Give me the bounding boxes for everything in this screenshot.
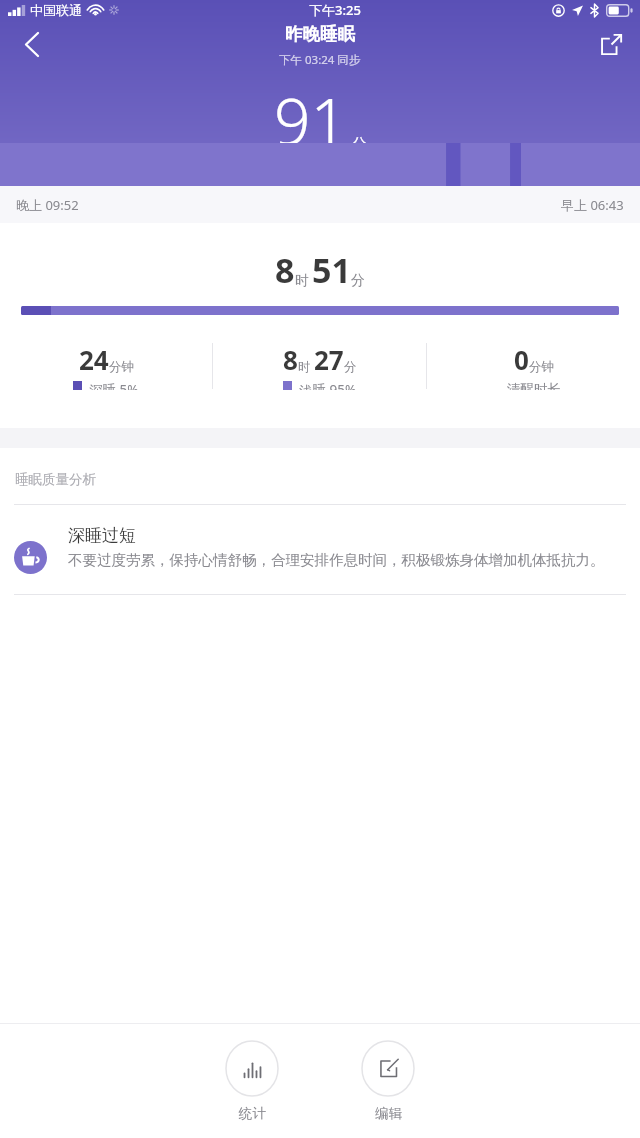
staticText: 27 [314, 342, 344, 377]
staticText: 深睡过短 [68, 525, 136, 546]
staticText: 下午3:25 [309, 1, 361, 19]
staticText: 睡眠质量分析 [15, 471, 96, 488]
staticText: 昨晚睡眠 [285, 23, 355, 45]
button[interactable]: 编辑 [345, 1024, 431, 1122]
button[interactable]: 24 [0, 342, 212, 390]
staticText: 24 [79, 342, 109, 377]
staticText: 分 [344, 359, 357, 375]
staticText: 分 [351, 272, 365, 290]
staticText: 时 [298, 359, 311, 375]
staticText: 下午 03:24 同步 [279, 52, 361, 68]
button[interactable]: 0 [427, 342, 640, 390]
button[interactable]: 8 [213, 342, 426, 390]
staticText: 中国联通 [30, 2, 82, 18]
staticText: 不要过度劳累，保持心情舒畅，合理安排作息时间，积极锻炼身体增加机体抵抗力。 [68, 551, 605, 569]
staticText: 你比 88% 的用户睡得香 [244, 167, 397, 187]
staticText: 清醒时长 [507, 381, 561, 390]
staticText: 分 [352, 135, 367, 154]
button[interactable]: Share [588, 21, 634, 67]
staticText: 8 [275, 247, 295, 293]
staticText: 编辑 [375, 1105, 402, 1122]
button[interactable]: Back [8, 21, 54, 67]
staticText: 晚上 09:52 [16, 196, 79, 214]
staticText: 统计 [239, 1105, 266, 1122]
staticText: 浅睡 95% [299, 381, 357, 390]
staticText: 0 [514, 342, 529, 377]
staticText: 分钟 [529, 359, 554, 375]
staticText: 分钟 [109, 359, 134, 375]
staticText: 91 [274, 77, 348, 164]
staticText: 8 [283, 342, 298, 377]
staticText: 早上 06:43 [561, 196, 624, 214]
staticText: 深睡 5% [89, 381, 139, 390]
button[interactable]: 深睡过短 [0, 505, 640, 594]
staticText: 时 [295, 272, 309, 290]
staticText: 51 [312, 247, 351, 293]
button[interactable]: 统计 [209, 1024, 295, 1122]
